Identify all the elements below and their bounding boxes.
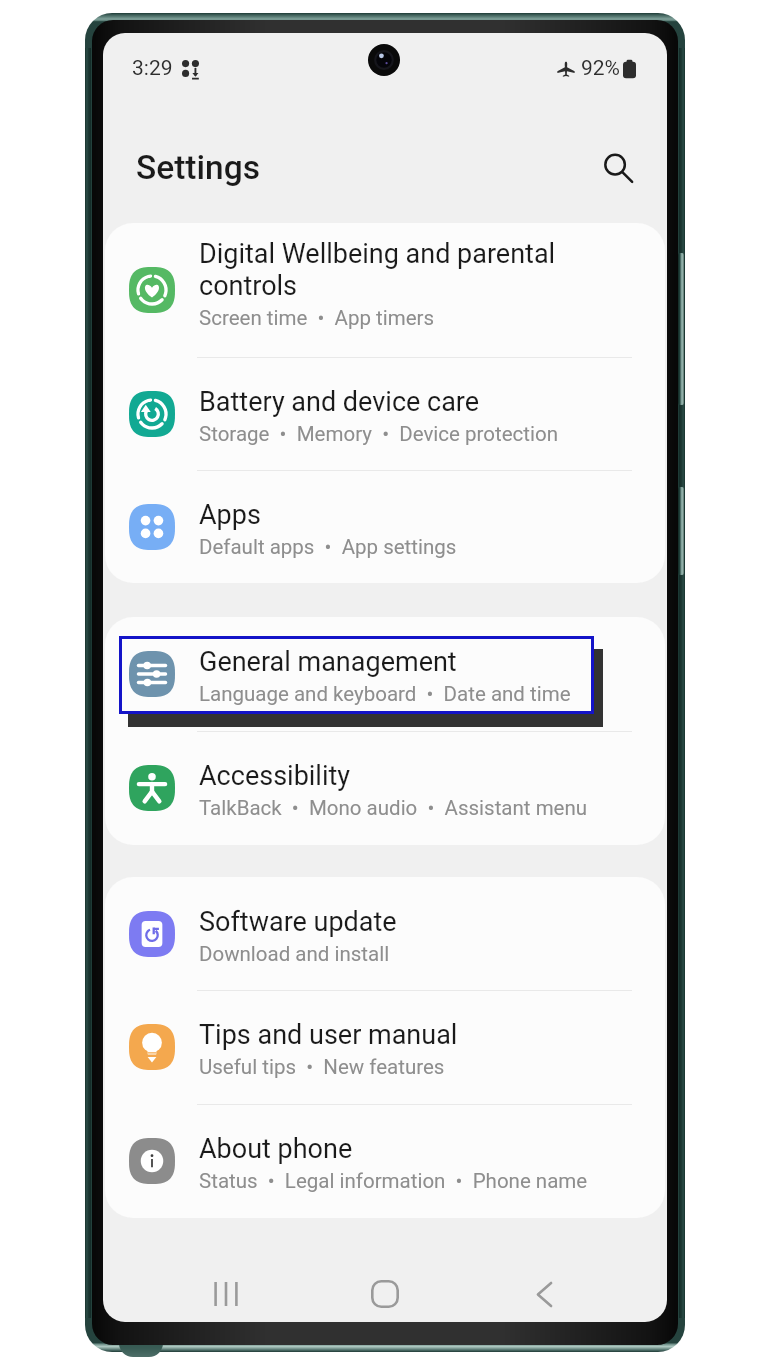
button[interactable]: General management [105, 617, 665, 731]
staticText: Settings [136, 148, 261, 187]
button[interactable]: Back [502, 1252, 586, 1322]
staticText: Accessibility [199, 760, 351, 792]
button[interactable]: Tips and user manual [105, 990, 665, 1104]
button[interactable]: Apps [105, 470, 665, 583]
staticText: Storage • Memory • Device protection [199, 422, 558, 446]
button[interactable]: About phone [105, 1104, 665, 1218]
button[interactable]: Recents [184, 1252, 268, 1322]
button[interactable]: Battery and device care [105, 357, 665, 470]
staticText: Digital Wellbeing and parental controls [199, 238, 556, 302]
staticText: Language and keyboard • Date and time [199, 682, 571, 706]
button[interactable]: Digital Wellbeing and parental controls [105, 223, 665, 357]
staticText: Software update [199, 906, 397, 938]
button[interactable]: Home [343, 1252, 427, 1322]
button[interactable]: Accessibility [105, 731, 665, 845]
staticText: Screen time • App timers [199, 306, 435, 330]
staticText: Status • Legal information • Phone name [199, 1169, 588, 1193]
staticText: Tips and user manual [199, 1019, 458, 1051]
staticText: Download and install [199, 942, 390, 966]
staticText: Default apps • App settings [199, 535, 457, 559]
staticText: About phone [199, 1133, 353, 1165]
staticText: TalkBack • Mono audio • Assistant menu [199, 796, 588, 820]
staticText: Apps [199, 499, 261, 531]
staticText: General management [199, 646, 457, 678]
staticText: 3:29 [132, 56, 173, 81]
button[interactable]: Search [592, 142, 644, 194]
staticText: Useful tips • New features [199, 1055, 445, 1079]
button[interactable]: Software update [105, 877, 665, 990]
staticText: Battery and device care [199, 386, 480, 418]
staticText: 92% [581, 56, 620, 81]
